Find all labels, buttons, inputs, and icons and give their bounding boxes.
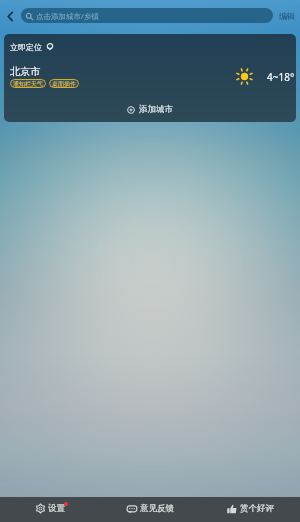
button[interactable]: 添加城市 bbox=[4, 96, 296, 122]
staticText: 编辑 bbox=[279, 11, 295, 21]
button[interactable]: Back bbox=[0, 0, 21, 31]
staticText: 设置 bbox=[48, 503, 65, 514]
staticText: 北京市 bbox=[10, 65, 40, 78]
button[interactable]: 设置 bbox=[0, 497, 100, 522]
staticText: 4~18° bbox=[267, 70, 295, 84]
button[interactable]: 北京市 bbox=[10, 59, 295, 94]
button[interactable]: 意见反馈 bbox=[100, 497, 200, 522]
staticText: 立即定位 bbox=[10, 42, 42, 52]
staticText: 添加城市 bbox=[139, 104, 173, 115]
button[interactable]: 点击添加城市/乡镇 bbox=[21, 8, 273, 23]
staticText: 通知栏天气 bbox=[13, 80, 43, 88]
staticText: 赏个好评 bbox=[240, 503, 274, 514]
staticText: 点击添加城市/乡镇 bbox=[36, 11, 99, 21]
staticText: 桌面插件 bbox=[52, 80, 76, 88]
button[interactable]: 赏个好评 bbox=[200, 497, 300, 522]
staticText: 意见反馈 bbox=[140, 503, 174, 514]
button[interactable]: 编辑 bbox=[274, 0, 300, 31]
button[interactable]: 立即定位 bbox=[10, 40, 296, 54]
